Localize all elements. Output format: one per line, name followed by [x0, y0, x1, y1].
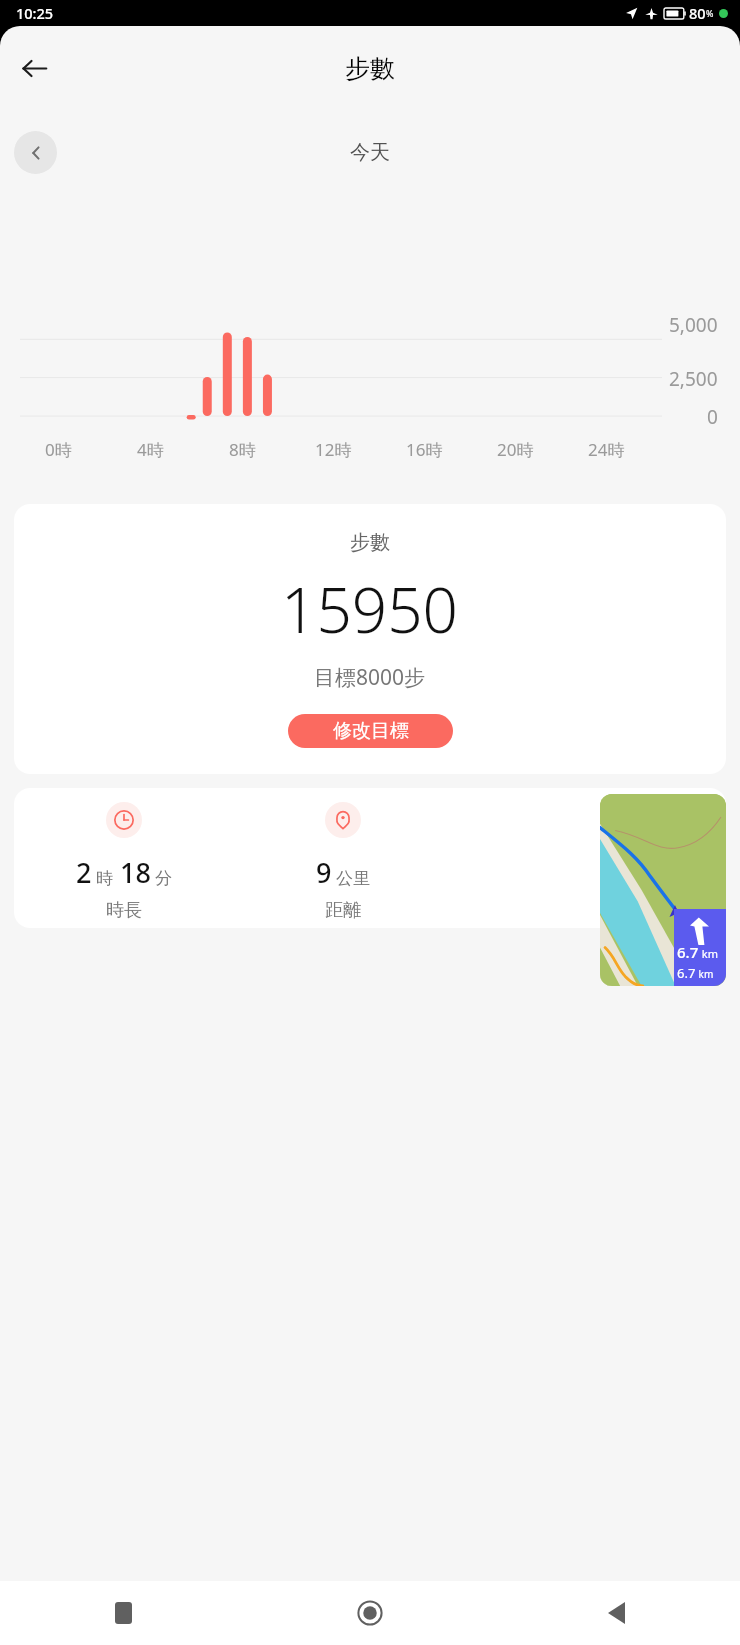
- button[interactable]: Previous day: [14, 131, 57, 174]
- staticText: 時: [96, 868, 113, 889]
- staticText: 分: [155, 868, 172, 889]
- staticText: 5,000: [669, 312, 718, 338]
- staticText: 修改目標: [333, 719, 409, 743]
- staticText: 6.7: [677, 942, 699, 962]
- staticText: 2: [76, 854, 92, 891]
- staticText: 15950: [281, 567, 459, 651]
- staticText: 時長: [106, 899, 142, 922]
- staticText: 8時: [229, 438, 256, 461]
- button[interactable]: Back: [8, 42, 60, 94]
- staticText: 今天: [350, 140, 390, 165]
- staticText: 0時: [45, 438, 72, 461]
- staticText: 6.7: [677, 964, 696, 982]
- button[interactable]: Back: [493, 1581, 740, 1645]
- button[interactable]: Recents: [0, 1581, 246, 1645]
- staticText: 目標8000步: [314, 663, 426, 692]
- staticText: 9: [316, 854, 332, 891]
- staticText: km: [699, 946, 719, 961]
- staticText: 12時: [315, 438, 352, 461]
- button[interactable]: 步數: [14, 504, 726, 774]
- staticText: 24時: [588, 438, 625, 461]
- staticText: km: [696, 967, 714, 981]
- button[interactable]: Home: [246, 1581, 493, 1645]
- staticText: 80: [689, 3, 706, 23]
- button[interactable]: 修改目標: [288, 714, 453, 748]
- staticText: 步數: [345, 53, 395, 84]
- button[interactable]: 2: [14, 788, 726, 928]
- staticText: 16時: [406, 438, 443, 461]
- staticText: 0: [707, 404, 718, 430]
- staticText: 20時: [497, 438, 534, 461]
- staticText: %: [706, 7, 714, 19]
- staticText: 10:25: [16, 3, 54, 23]
- staticText: 步數: [350, 530, 390, 555]
- staticText: 4時: [137, 438, 164, 461]
- staticText: 距離: [325, 899, 361, 922]
- staticText: 公里: [336, 868, 370, 889]
- staticText: 2,500: [669, 366, 718, 392]
- button[interactable]: Route map: [600, 794, 726, 986]
- staticText: 18: [120, 854, 151, 891]
